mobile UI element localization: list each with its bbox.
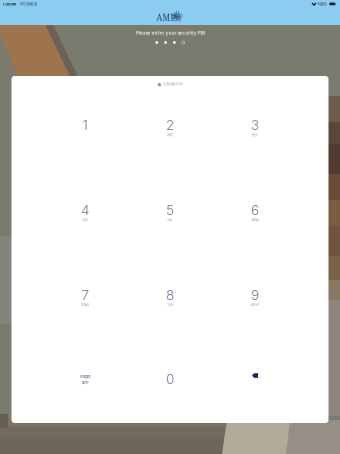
staticText: 0: [166, 371, 174, 387]
staticText: JKL: [167, 218, 173, 222]
staticText: PQRS: [81, 303, 89, 307]
button[interactable]: 8: [127, 259, 212, 344]
staticText: GHI: [82, 218, 87, 222]
staticText: WXYZ: [250, 303, 259, 307]
staticText: DEF: [252, 133, 258, 137]
staticText: 7: [81, 287, 88, 303]
button[interactable]: 9: [212, 259, 297, 344]
staticText: 100%: [317, 2, 327, 7]
staticText: TUV: [167, 303, 173, 307]
staticText: ABC: [167, 133, 173, 137]
staticText: 1:28 PM: [2, 2, 16, 7]
staticText: Please enter your security PIN: [135, 30, 204, 36]
staticText: 6: [251, 202, 259, 218]
staticText: 4: [81, 202, 89, 218]
staticText: 9: [251, 287, 259, 303]
staticText: 1: [82, 117, 87, 133]
staticText: AMP: [156, 12, 175, 23]
button[interactable]: 2: [127, 89, 212, 174]
button[interactable]: 0: [127, 344, 212, 430]
staticText: Secure Pin: [163, 82, 182, 86]
button[interactable]: 3: [212, 89, 297, 174]
staticText: MNO: [251, 218, 258, 222]
staticText: pin?: [81, 380, 88, 385]
staticText: 5: [166, 202, 174, 218]
staticText: 3: [251, 117, 259, 133]
button[interactable]: 4: [42, 174, 127, 259]
button[interactable]: Delete: [212, 344, 297, 430]
button[interactable]: 6: [212, 174, 297, 259]
button[interactable]: Forgot: [42, 344, 127, 430]
staticText: Fri Dec 6: [20, 2, 36, 7]
button[interactable]: 7: [42, 259, 127, 344]
staticText: Forgot: [80, 374, 90, 379]
button[interactable]: 1: [42, 89, 127, 174]
staticText: 8: [166, 287, 174, 303]
button[interactable]: 5: [127, 174, 212, 259]
staticText: 2: [166, 117, 174, 133]
